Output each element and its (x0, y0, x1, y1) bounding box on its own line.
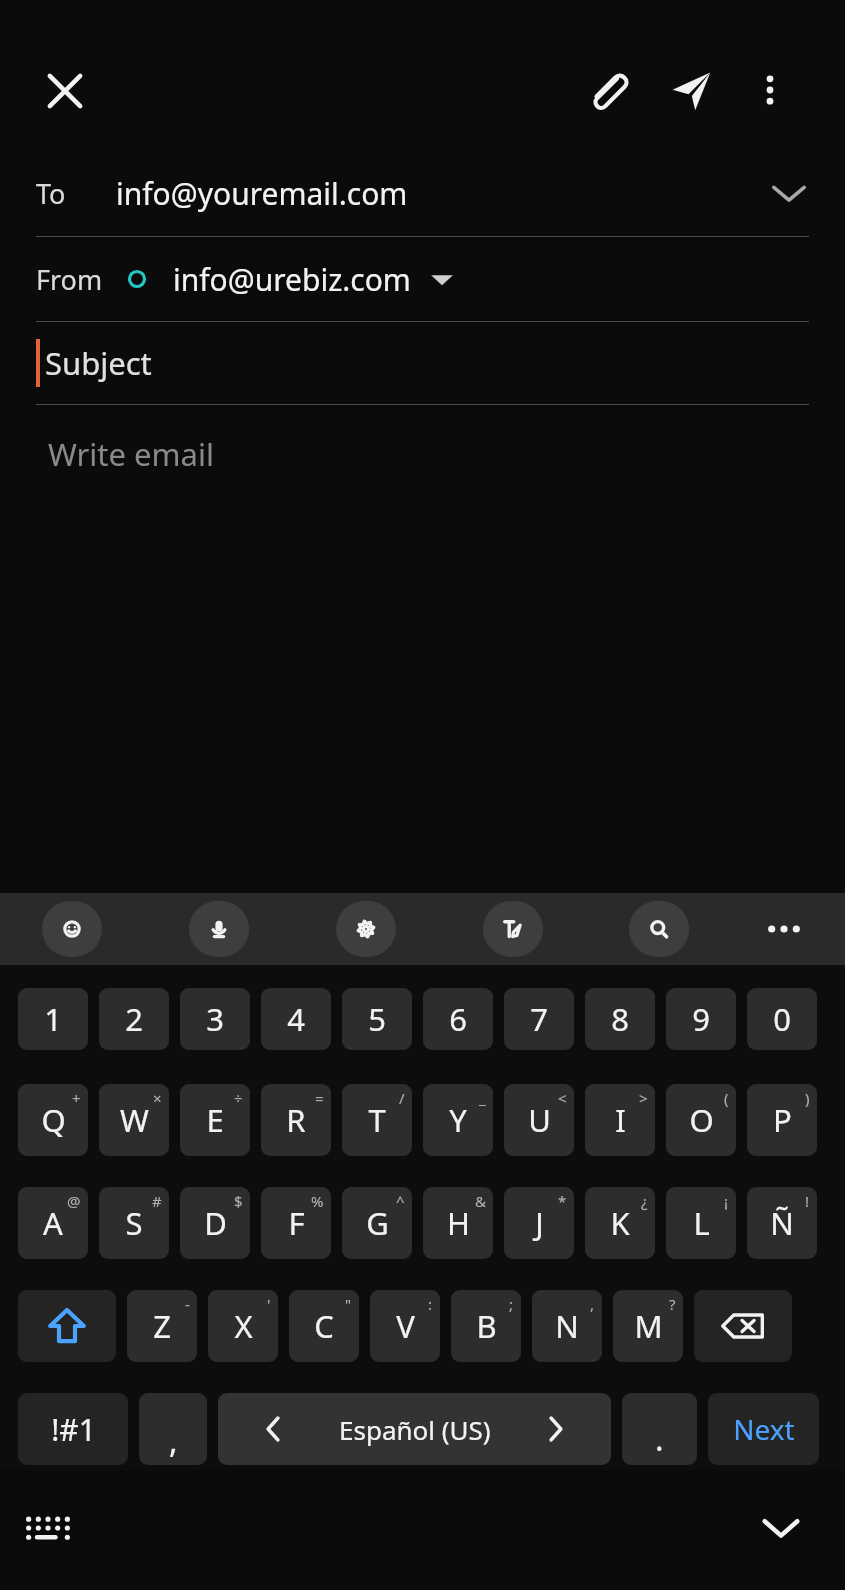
button[interactable]: I (585, 1084, 655, 1156)
staticText: ( (724, 1088, 729, 1108)
button[interactable]: Ñ (747, 1187, 817, 1259)
staticText: ) (805, 1088, 810, 1108)
staticText: S (125, 1202, 143, 1244)
button[interactable]: !#1 (18, 1393, 128, 1465)
button[interactable]: Hide keyboard (742, 1488, 820, 1566)
staticText: D (204, 1202, 227, 1244)
button[interactable]: G (342, 1187, 412, 1259)
button[interactable]: M (613, 1290, 683, 1362)
button[interactable]: F (261, 1187, 331, 1259)
staticText: + (72, 1088, 81, 1108)
staticText: X (234, 1305, 253, 1347)
button[interactable]: More (752, 893, 816, 965)
staticText: F (288, 1202, 305, 1244)
button[interactable]: Backspace (694, 1290, 792, 1362)
button[interactable]: 2 (99, 988, 169, 1050)
staticText: I (615, 1099, 626, 1141)
staticText: E (206, 1099, 224, 1141)
staticText: @ (67, 1191, 81, 1211)
button[interactable]: 0 (747, 988, 817, 1050)
button[interactable]: E (180, 1084, 250, 1156)
staticText: 1 (44, 998, 62, 1040)
staticText: " (345, 1294, 352, 1314)
staticText: # (152, 1191, 162, 1211)
staticText: 7 (530, 998, 548, 1040)
staticText: From (36, 261, 103, 298)
button[interactable]: H (423, 1187, 493, 1259)
button[interactable]: J (504, 1187, 574, 1259)
button[interactable]: U (504, 1084, 574, 1156)
button[interactable]: Keyboard tool (629, 901, 689, 957)
button[interactable]: Subject (0, 322, 845, 404)
staticText: Next (733, 1410, 795, 1448)
button[interactable]: W (99, 1084, 169, 1156)
staticText: * (558, 1191, 567, 1211)
button[interactable]: Close (36, 62, 94, 120)
staticText: 4 (287, 998, 305, 1040)
button[interactable]: , (139, 1393, 207, 1465)
staticText: 8 (611, 998, 629, 1040)
button[interactable]: T (342, 1084, 412, 1156)
button[interactable]: Y (423, 1084, 493, 1156)
button[interactable]: Shift (18, 1290, 116, 1362)
button[interactable]: Q (18, 1084, 88, 1156)
staticText: P (773, 1099, 792, 1141)
button[interactable]: S (99, 1187, 169, 1259)
button[interactable]: From (0, 237, 845, 321)
button[interactable]: Attach (576, 60, 638, 122)
button[interactable]: 3 (180, 988, 250, 1050)
button[interactable]: 4 (261, 988, 331, 1050)
button[interactable]: 6 (423, 988, 493, 1050)
button[interactable]: Change keyboard (12, 1492, 84, 1564)
button[interactable]: B (451, 1290, 521, 1362)
staticText: > (639, 1088, 648, 1108)
button[interactable]: D (180, 1187, 250, 1259)
staticText: G (366, 1202, 389, 1244)
button[interactable]: Keyboard tool (483, 901, 543, 957)
staticText: Q (41, 1099, 66, 1141)
staticText: T (368, 1099, 386, 1141)
staticText: H (447, 1202, 470, 1244)
staticText: ¡ (724, 1191, 729, 1211)
staticText: 5 (368, 998, 386, 1040)
button[interactable]: O (666, 1084, 736, 1156)
button[interactable]: 5 (342, 988, 412, 1050)
staticText: : (428, 1294, 433, 1314)
button[interactable]: L (666, 1187, 736, 1259)
button[interactable]: 1 (18, 988, 88, 1050)
button[interactable]: A (18, 1187, 88, 1259)
button[interactable]: K (585, 1187, 655, 1259)
button[interactable]: Send (660, 60, 722, 122)
staticText: ÷ (234, 1088, 243, 1108)
staticText: info@urebiz.com (173, 259, 411, 300)
staticText: ; (509, 1294, 514, 1314)
staticText: info@youremail.com (116, 173, 408, 214)
button[interactable]: Español (US) (218, 1393, 611, 1465)
staticText: 6 (449, 998, 467, 1040)
button[interactable]: C (289, 1290, 359, 1362)
button[interactable]: N (532, 1290, 602, 1362)
button[interactable]: Next (708, 1393, 819, 1465)
button[interactable]: 7 (504, 988, 574, 1050)
button[interactable]: Z (127, 1290, 197, 1362)
button[interactable]: . (622, 1393, 697, 1465)
button[interactable]: X (208, 1290, 278, 1362)
button[interactable]: More options (740, 60, 800, 120)
button[interactable]: Write email (0, 405, 845, 893)
button[interactable]: P (747, 1084, 817, 1156)
button[interactable]: Keyboard tool (189, 901, 249, 957)
button[interactable]: Keyboard tool (42, 901, 102, 957)
staticText: V (396, 1305, 415, 1347)
staticText: 2 (125, 998, 143, 1040)
staticText: _ (479, 1088, 486, 1108)
button[interactable]: V (370, 1290, 440, 1362)
staticText: C (314, 1305, 334, 1347)
button[interactable]: To (0, 150, 845, 236)
button[interactable]: 8 (585, 988, 655, 1050)
staticText: $ (234, 1191, 243, 1211)
button[interactable]: Keyboard tool (336, 901, 396, 957)
button[interactable]: 9 (666, 988, 736, 1050)
button[interactable]: R (261, 1084, 331, 1156)
staticText: ' (267, 1294, 271, 1314)
staticText: U (528, 1099, 551, 1141)
